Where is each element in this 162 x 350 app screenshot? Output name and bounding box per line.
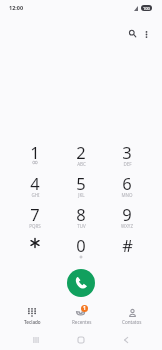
button[interactable]: #	[104, 234, 150, 265]
button[interactable]: Back	[103, 334, 148, 345]
button[interactable]: 8	[58, 203, 104, 234]
staticText: 1	[30, 141, 40, 163]
staticText: TUV	[77, 223, 86, 229]
button[interactable]: 1	[57, 305, 107, 329]
staticText: 1	[83, 305, 86, 312]
button[interactable]: More options	[136, 24, 156, 44]
staticText: PQRS	[29, 223, 41, 229]
button[interactable]: 2	[58, 141, 104, 172]
button[interactable]: 4	[12, 172, 58, 203]
staticText: 2	[76, 141, 86, 163]
staticText: Contatos	[122, 319, 142, 325]
staticText: 12:00	[9, 4, 24, 11]
staticText: DEF	[123, 161, 132, 167]
button[interactable]	[12, 234, 58, 265]
button[interactable]: Call	[67, 269, 95, 297]
staticText: 7	[30, 203, 40, 225]
staticText: GHI	[31, 192, 40, 198]
staticText: 100	[143, 6, 150, 11]
button[interactable]: Home	[58, 334, 103, 345]
staticText: #	[122, 234, 133, 256]
staticText: 5	[76, 172, 86, 194]
button[interactable]: Recent apps	[14, 334, 58, 345]
staticText: 9	[122, 203, 132, 225]
staticText: 6	[122, 172, 132, 194]
button[interactable]: Teclado	[7, 305, 57, 329]
button[interactable]: 7	[12, 203, 58, 234]
button[interactable]: 9	[104, 203, 150, 234]
staticText: 3	[122, 141, 132, 163]
staticText: 8	[76, 203, 86, 225]
staticText: Teclado	[24, 319, 41, 325]
button[interactable]: 1	[12, 141, 58, 172]
staticText: ABC	[77, 161, 86, 167]
button[interactable]: 5	[58, 172, 104, 203]
button[interactable]: 3	[104, 141, 150, 172]
staticText: WXYZ	[121, 223, 133, 229]
button[interactable]: 6	[104, 172, 150, 203]
button[interactable]: 0	[58, 234, 104, 265]
staticText: 0	[76, 234, 86, 256]
button[interactable]: Contatos	[107, 305, 157, 329]
staticText: Recentes	[72, 319, 92, 325]
staticText: 4	[30, 172, 40, 194]
button[interactable]: Search	[122, 23, 142, 43]
staticText: JKL	[78, 192, 85, 198]
staticText: MNO	[121, 192, 133, 198]
